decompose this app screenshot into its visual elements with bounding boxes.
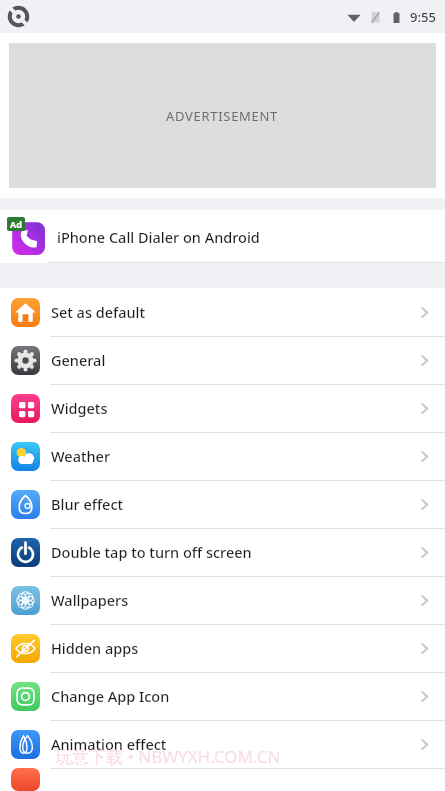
staticText: General	[51, 350, 106, 370]
staticText: 9:55	[410, 8, 436, 26]
button[interactable]: Blur effect	[0, 480, 445, 528]
staticText: Weather	[51, 446, 111, 466]
button[interactable]: Wallpapers	[0, 576, 445, 624]
button[interactable]: General	[0, 336, 445, 384]
staticText: ADVERTISEMENT	[166, 107, 279, 125]
staticText: Hidden apps	[51, 638, 139, 658]
staticText: iPhone Call Dialer on Android	[57, 227, 260, 247]
staticText: Wallpapers	[51, 590, 129, 610]
button[interactable]: Set as default	[0, 288, 445, 336]
button[interactable]: Animation effect	[0, 720, 445, 768]
button[interactable]: Ad	[0, 210, 445, 263]
staticText: Change App Icon	[51, 686, 170, 706]
staticText: Widgets	[51, 398, 108, 418]
button[interactable]: Hidden apps	[0, 624, 445, 672]
button[interactable]: Double tap to turn off screen	[0, 528, 445, 576]
staticText: Animation effect	[51, 734, 167, 754]
button[interactable]: ADVERTISEMENT	[0, 33, 445, 198]
other: App logo	[9, 7, 28, 26]
staticText: 玩意下载 • NBWYXH.COM.CN	[55, 745, 281, 768]
button[interactable]: Widgets	[0, 384, 445, 432]
button[interactable]: Weather	[0, 432, 445, 480]
staticText: Blur effect	[51, 494, 124, 514]
button[interactable]: Change App Icon	[0, 672, 445, 720]
staticText: Ad	[10, 218, 22, 230]
staticText: Set as default	[51, 302, 146, 322]
button[interactable]	[0, 768, 445, 791]
staticText: Double tap to turn off screen	[51, 542, 252, 562]
